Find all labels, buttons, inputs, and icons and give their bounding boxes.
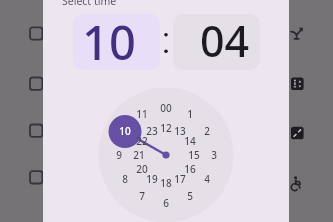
staticText: 2 [204,124,210,138]
staticText: 8 [122,172,128,186]
button[interactable] [99,88,234,222]
staticText: 20 [136,162,148,176]
staticText: 12 [160,121,172,135]
staticText: 9 [116,148,122,162]
staticText: Select time [62,0,117,8]
staticText: 13 [174,124,186,138]
staticText: 14 [184,134,196,148]
staticText: 6 [163,196,169,210]
staticText: 11 [136,107,148,121]
staticText: 22 [136,134,148,148]
button[interactable]: 04 [173,14,260,70]
staticText: 19 [146,172,158,186]
staticText: 17 [174,172,186,186]
staticText: 23 [146,124,158,138]
staticText: 5 [187,189,193,203]
staticText: 18 [160,176,172,190]
staticText: 16 [184,162,196,176]
staticText: 04 [200,11,250,67]
staticText: 1 [187,107,193,121]
staticText: 7 [139,189,145,203]
staticText: 10 [82,10,136,66]
staticText: 10 [119,124,131,138]
staticText: 00 [160,101,172,115]
staticText: 15 [188,148,200,162]
staticText: 21 [133,148,145,162]
button[interactable]: 10 [73,14,160,70]
staticText: 4 [204,172,210,186]
staticText: 3 [211,148,217,162]
